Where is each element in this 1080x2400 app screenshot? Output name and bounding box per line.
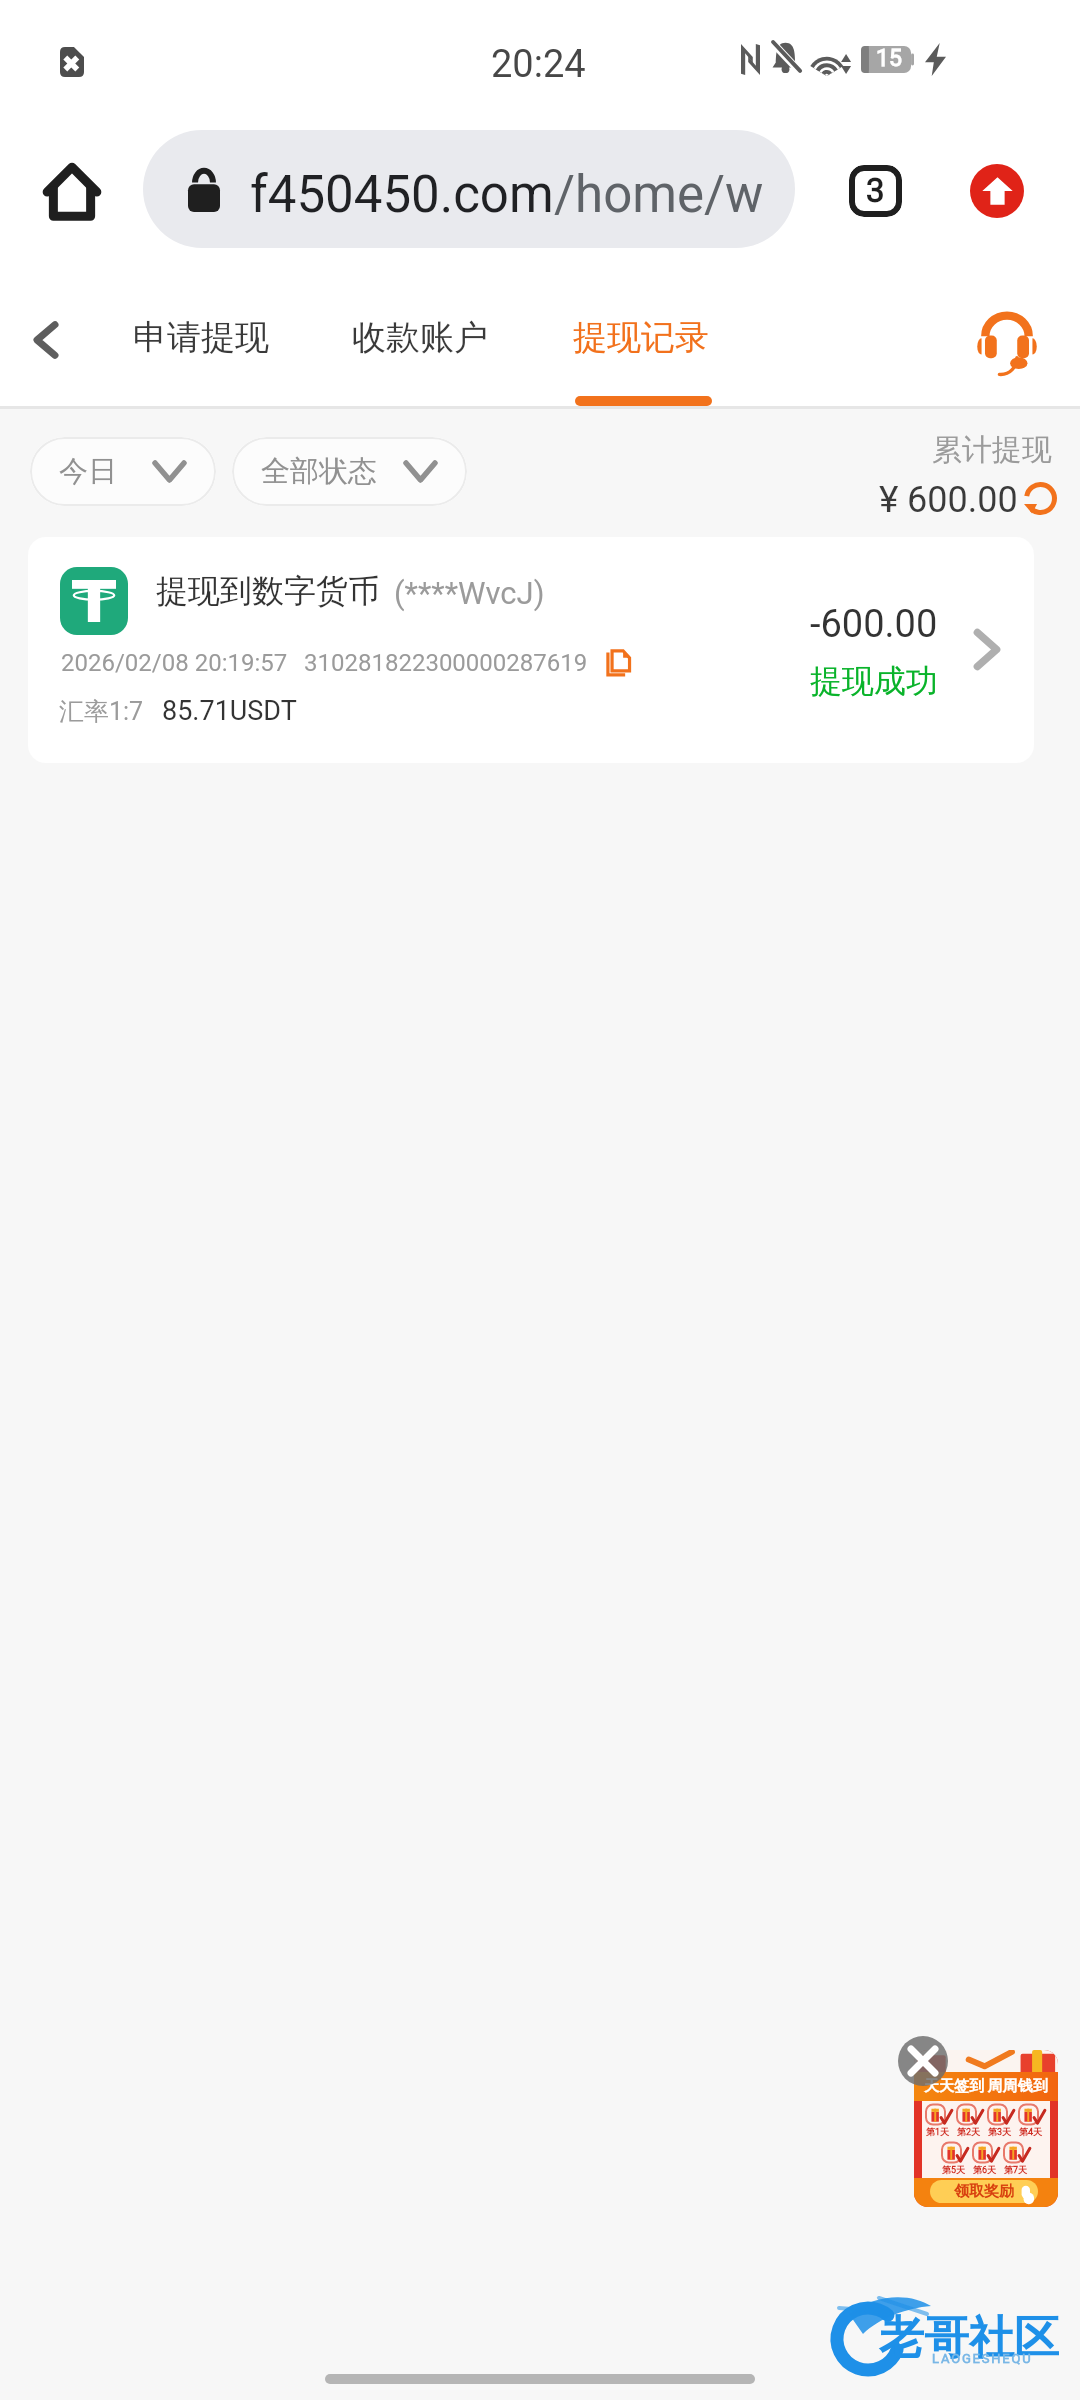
staticText: 收款账户	[352, 316, 488, 359]
staticText: 天天签到 周周钱到	[924, 2077, 1048, 2096]
staticText: 310281822300000287619	[304, 649, 588, 677]
staticText: 第4天	[1019, 2126, 1043, 2137]
staticText: 提现到数字货币	[156, 571, 380, 611]
staticText: 85.71USDT	[162, 695, 297, 727]
staticText: 3	[866, 171, 885, 210]
button[interactable]: 全部状态	[232, 437, 467, 506]
staticText: 第5天	[942, 2164, 966, 2175]
staticText: 全部状态	[261, 453, 377, 490]
button[interactable]: 提现到数字货币	[28, 537, 1034, 763]
staticText: f450450.com	[250, 165, 554, 225]
staticText: 2026/02/08 20:19:57	[61, 649, 288, 677]
button[interactable]: 申请提现	[121, 272, 281, 406]
staticText: 申请提现	[133, 316, 269, 359]
staticText: 第7天	[1004, 2164, 1028, 2175]
button[interactable]: Customer service	[964, 298, 1050, 384]
staticText: 老哥社区	[879, 2310, 1059, 2367]
staticText: 600.00	[907, 479, 1018, 521]
staticText: 20:24	[491, 42, 586, 87]
button[interactable]: 天天签到 周周钱到	[914, 2050, 1058, 2207]
staticText: 领取奖励	[954, 2182, 1014, 2201]
staticText: (****WvcJ)	[394, 575, 545, 611]
staticText: 汇率1:7	[59, 696, 144, 727]
button[interactable]: Close	[898, 2036, 948, 2086]
staticText: ¥	[879, 478, 899, 521]
button[interactable]: f450450.com	[143, 130, 795, 248]
staticText: 提现成功	[810, 661, 938, 701]
staticText: 15	[876, 45, 902, 72]
staticText: 第1天	[926, 2126, 950, 2137]
button[interactable]: 今日	[30, 437, 216, 506]
button[interactable]: Home	[28, 148, 116, 236]
staticText: 累计提现	[932, 431, 1052, 469]
button[interactable]: Tabs	[833, 149, 917, 233]
staticText: 第3天	[988, 2126, 1012, 2137]
staticText: 今日	[59, 453, 117, 490]
staticText: -600.00	[810, 602, 938, 647]
staticText: 提现记录	[573, 316, 709, 359]
button[interactable]: 提现记录	[561, 272, 721, 406]
staticText: LAOGESHEQU	[932, 2351, 1033, 2366]
button[interactable]: Upload	[970, 164, 1024, 218]
button[interactable]: Back	[4, 298, 88, 382]
button[interactable]: 收款账户	[340, 272, 500, 406]
staticText: 第2天	[957, 2126, 981, 2137]
staticText: /home/w	[554, 165, 764, 225]
staticText: 第6天	[973, 2164, 997, 2175]
